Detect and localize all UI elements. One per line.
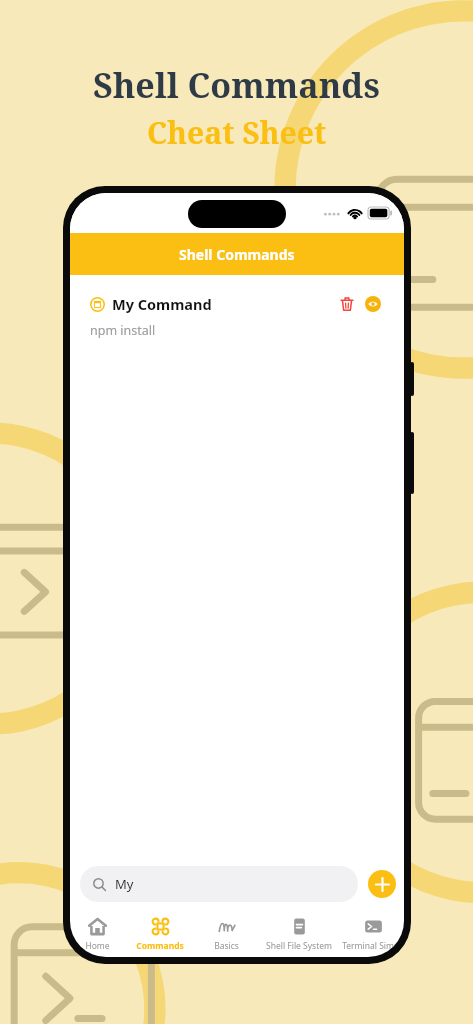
button[interactable]: Commands [124,910,196,957]
staticText: Shell File System [266,940,332,952]
staticText: Basics [214,940,239,952]
button[interactable]: My Command [78,283,396,349]
staticText: My Command [112,294,212,314]
button[interactable]: Terminal Simulator [342,910,404,957]
staticText: Cheat Sheet [147,112,327,153]
staticText: My [115,875,134,893]
button[interactable]: My [80,866,358,902]
staticText: npm install [90,322,156,339]
staticText: Shell Commands [93,62,380,108]
button[interactable]: Add command [368,870,396,898]
staticText: Commands [136,940,184,952]
button[interactable]: Shell File System [256,910,342,957]
staticText: Home [85,940,110,952]
button[interactable]: Home [70,910,124,957]
button[interactable]: View command [362,293,384,315]
staticText: Terminal Simulator [342,940,404,952]
button[interactable]: Delete command [336,293,358,315]
staticText: Shell Commands [179,245,295,264]
button[interactable]: Basics [196,910,256,957]
